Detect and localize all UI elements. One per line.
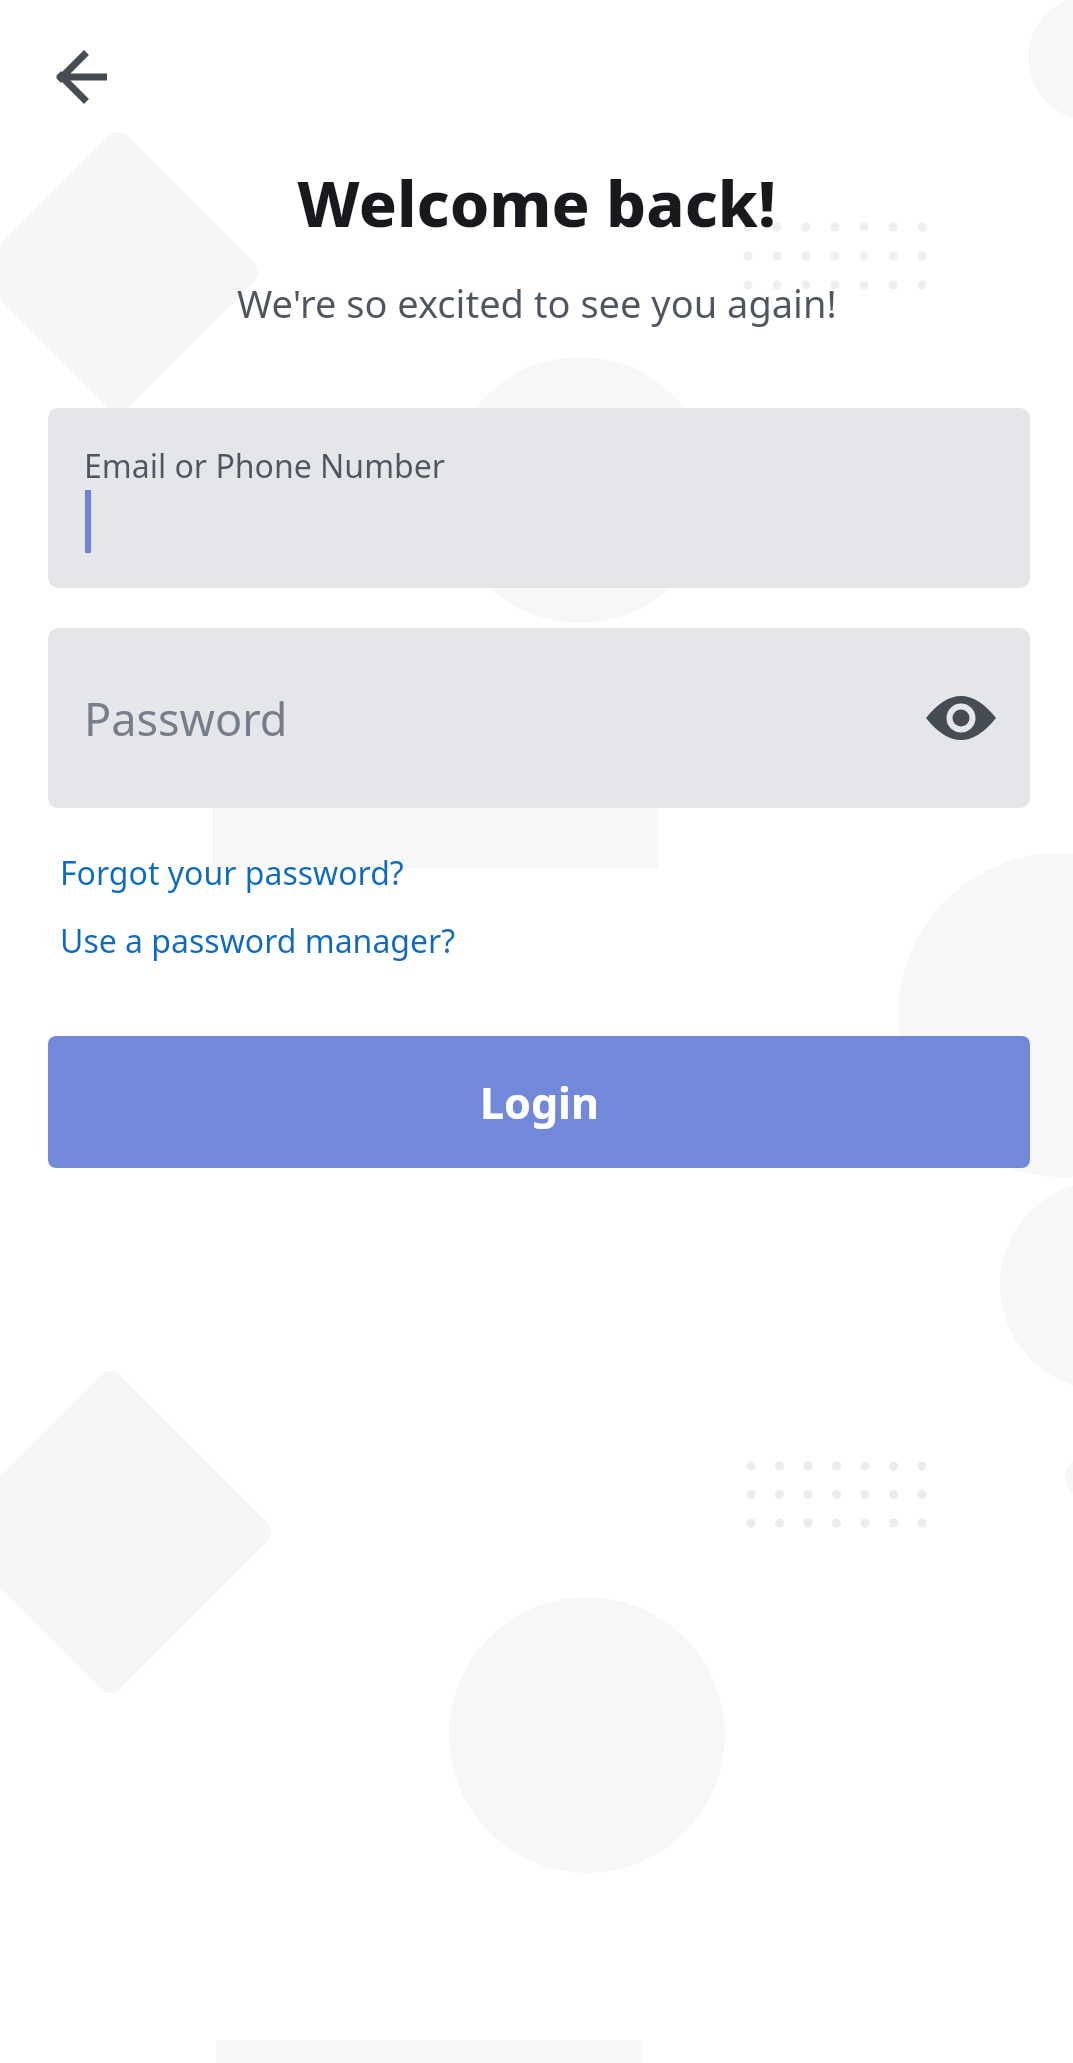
staticText: We're so excited to see you again! <box>237 277 837 329</box>
button[interactable]: Forgot your password? <box>60 851 404 895</box>
button[interactable] <box>48 41 120 113</box>
button[interactable] <box>926 692 996 744</box>
button[interactable]: Email or Phone Number <box>48 408 1030 588</box>
button[interactable]: Login <box>48 1036 1030 1168</box>
staticText: Login <box>480 1073 599 1132</box>
button[interactable]: Use a password manager? <box>60 919 456 963</box>
button[interactable]: Password <box>48 628 1030 808</box>
staticText: Forgot your password? <box>60 851 404 895</box>
staticText: Use a password manager? <box>60 919 456 963</box>
staticText: Welcome back! <box>297 160 777 246</box>
staticText: Password <box>84 688 288 749</box>
staticText: Email or Phone Number <box>84 444 445 488</box>
